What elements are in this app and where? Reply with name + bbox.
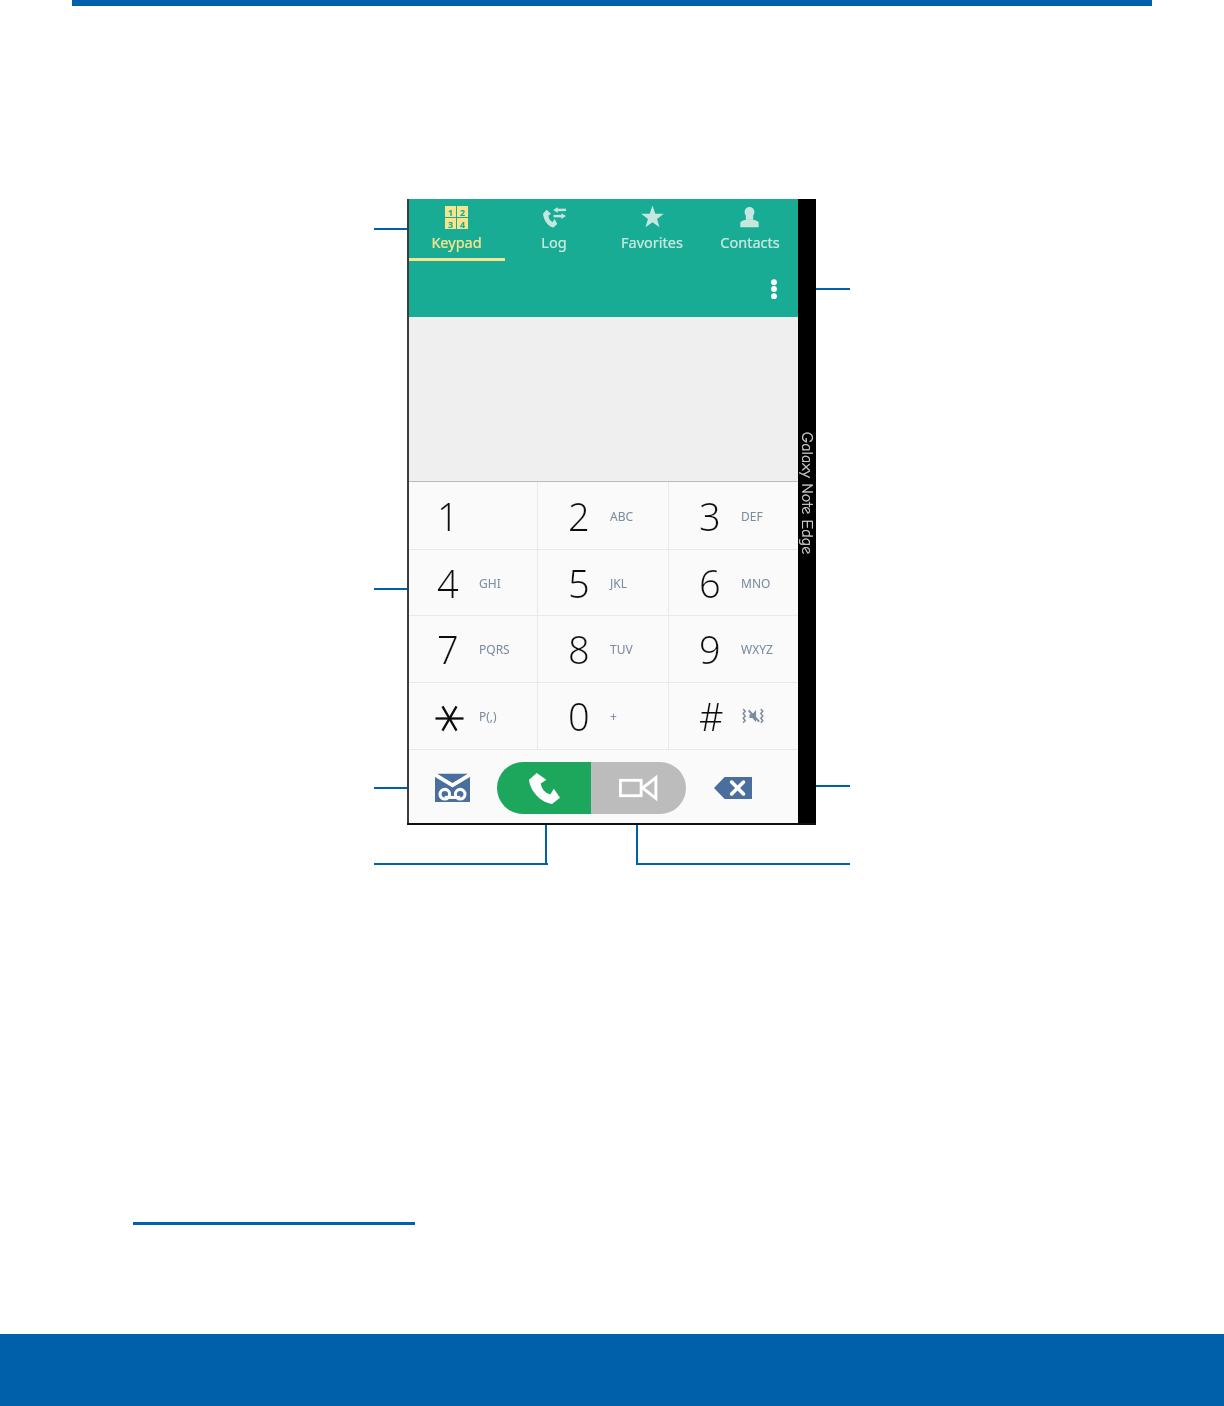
staticText: JKL — [610, 575, 627, 591]
staticText: 4 — [437, 557, 459, 609]
button[interactable]: 6 — [669, 550, 798, 615]
staticText: Contacts — [720, 232, 780, 252]
button[interactable]: Delete — [714, 777, 752, 799]
staticText: 2 — [460, 206, 466, 217]
button[interactable]: Voicemail — [435, 773, 470, 802]
button[interactable]: 8 — [538, 616, 668, 682]
staticText: 1 — [437, 490, 459, 542]
button[interactable]: Contacts — [701, 199, 798, 261]
staticText: 7 — [437, 623, 459, 675]
button[interactable]: 3 — [669, 482, 798, 549]
staticText: # — [699, 690, 724, 742]
staticText: Favorites — [621, 232, 683, 252]
staticText: Keypad — [431, 232, 482, 252]
staticText: 5 — [568, 557, 590, 609]
staticText: 3 — [448, 218, 454, 229]
staticText: MNO — [741, 575, 771, 591]
staticText: 1 — [448, 206, 454, 217]
button[interactable]: 2 — [538, 482, 668, 549]
button[interactable]: 1 — [407, 482, 537, 549]
staticText: 8 — [568, 623, 590, 675]
staticText: DEF — [741, 508, 763, 524]
staticText: GHI — [479, 575, 501, 591]
button[interactable]: P(,) — [407, 683, 537, 749]
staticText: Galaxy Note Edge — [798, 418, 816, 568]
button[interactable]: Favorites — [603, 199, 701, 261]
button[interactable]: Video call — [591, 762, 686, 814]
button[interactable]: 7 — [407, 616, 537, 682]
staticText: 4 — [460, 218, 466, 229]
button[interactable]: 4 — [407, 550, 537, 615]
staticText: 3 — [699, 490, 721, 542]
staticText: 6 — [699, 557, 721, 609]
button[interactable]: 0 — [538, 683, 668, 749]
button[interactable]: More options — [761, 276, 787, 302]
staticText: 2 — [568, 490, 590, 542]
staticText: 9 — [699, 623, 721, 675]
staticText: TUV — [610, 641, 633, 657]
button[interactable]: # — [669, 683, 798, 749]
staticText: ABC — [610, 508, 634, 524]
staticText: 0 — [568, 690, 590, 742]
button[interactable]: Call — [497, 762, 591, 814]
staticText: WXYZ — [741, 641, 773, 657]
button[interactable]: 1 — [407, 199, 505, 261]
staticText: PQRS — [479, 641, 510, 657]
button[interactable]: 9 — [669, 616, 798, 682]
button[interactable]: Log — [505, 199, 603, 261]
staticText: + — [610, 708, 617, 724]
button[interactable]: 5 — [538, 550, 668, 615]
staticText: Log — [541, 232, 567, 252]
staticText: P(,) — [479, 708, 497, 724]
